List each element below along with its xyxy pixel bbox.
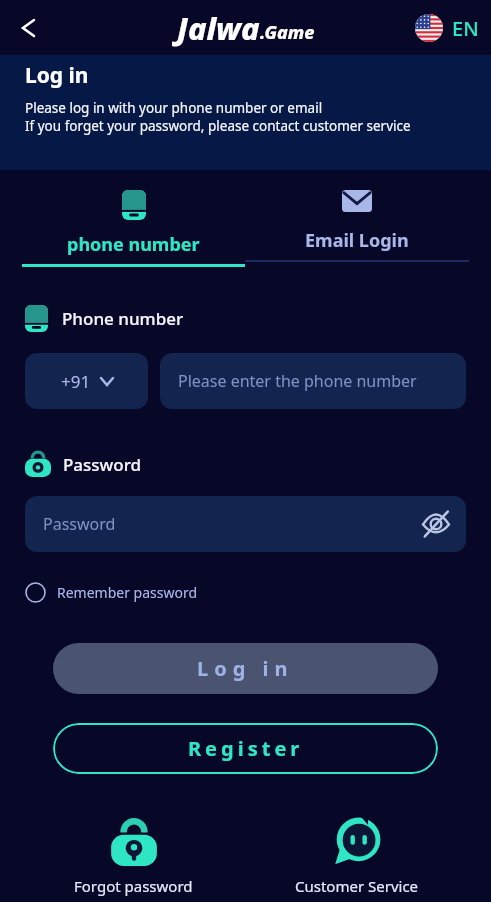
staticText: Please enter the phone number — [178, 370, 417, 392]
button[interactable]: Log in — [53, 643, 438, 694]
button[interactable]: Please enter the phone number — [160, 353, 466, 409]
staticText: Password — [63, 453, 142, 476]
staticText: Log in — [25, 61, 89, 90]
staticText: Jalwa — [177, 7, 260, 49]
button[interactable]: Register — [53, 723, 438, 774]
button[interactable] — [420, 508, 452, 540]
staticText: Remember password — [57, 583, 198, 602]
staticText: Email Login — [305, 228, 409, 253]
button[interactable]: Email Login — [245, 190, 469, 262]
staticText: Please log in with your phone number or … — [25, 99, 323, 117]
button[interactable]: Remember password — [25, 582, 198, 603]
staticText: Log in — [197, 655, 294, 682]
button[interactable] — [10, 10, 46, 46]
staticText: Register — [188, 735, 304, 762]
button[interactable]: EN — [415, 14, 479, 42]
staticText: .Game — [260, 20, 315, 45]
staticText: phone number — [67, 232, 200, 257]
staticText: If you forget your password, please cont… — [25, 117, 411, 135]
staticText: Password — [43, 513, 116, 535]
staticText: Customer Service — [295, 876, 419, 896]
button[interactable]: Customer Service — [245, 816, 469, 896]
button[interactable]: phone number — [22, 190, 245, 267]
button[interactable]: +91 — [25, 353, 148, 409]
staticText: Forgot password — [74, 876, 193, 896]
staticText: Phone number — [62, 307, 184, 330]
button[interactable]: Password — [25, 496, 466, 552]
button[interactable]: Forgot password — [22, 816, 245, 896]
staticText: +91 — [61, 370, 91, 393]
staticText: EN — [452, 15, 479, 42]
